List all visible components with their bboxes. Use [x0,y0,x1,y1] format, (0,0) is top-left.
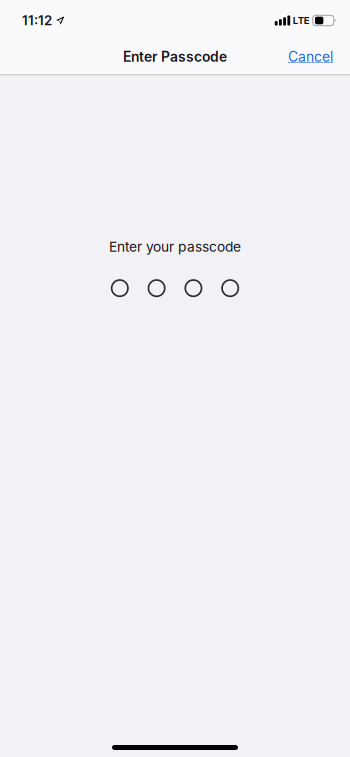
staticText: 11:12 [22,12,52,28]
staticText: Enter your passcode [109,238,241,255]
button[interactable]: Cancel [278,40,343,73]
staticText: Enter Passcode [123,48,227,65]
staticText: Cancel [288,48,333,65]
staticText: LTE [293,15,310,26]
